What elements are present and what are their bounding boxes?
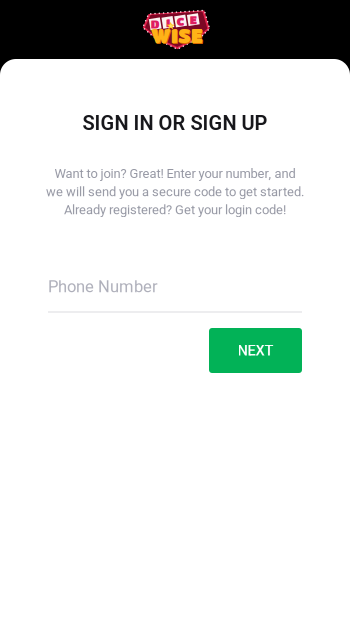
staticText: I [166,15,170,29]
staticText: WISE [152,25,204,47]
button[interactable]: NEXT [209,328,302,373]
staticText: SIGN IN OR SIGN UP [82,111,267,135]
staticText: NEXT [237,342,273,359]
staticText: we will send you a secure code to get st… [46,184,304,199]
staticText: Already registered? Get your login code! [64,202,286,217]
staticText: E [190,13,197,26]
staticText: Phone Number [48,277,158,296]
staticText: D [151,17,160,31]
staticText: C [177,14,185,28]
staticText: WISE [151,24,203,46]
staticText: Want to join? Great! Enter your number, … [54,166,295,181]
